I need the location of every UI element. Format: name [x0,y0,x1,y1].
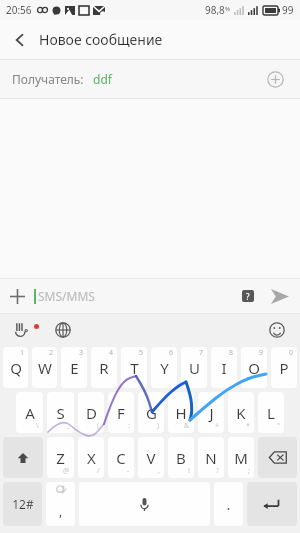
staticText: J [209,403,214,423]
button[interactable]: P [271,347,297,388]
staticText: U [189,358,200,378]
button[interactable]: I [211,347,237,388]
staticText: Q [10,358,22,378]
button[interactable]: 12# [3,482,42,526]
staticText: / [97,466,100,476]
button[interactable]: . [214,482,243,526]
staticText: : [128,421,130,431]
staticText: \ [36,421,39,431]
button[interactable]: V [138,437,164,478]
button[interactable]: F [108,392,134,433]
button[interactable]: Send [264,280,296,312]
staticText: 7 [199,348,204,358]
staticText: L [267,403,275,423]
staticText: B [176,448,186,468]
staticText: ! [188,466,190,476]
button[interactable]: Y [151,347,177,388]
button[interactable]: L [258,392,284,433]
button[interactable]: N [198,437,224,478]
staticText: O [248,358,260,378]
button[interactable]: Q [3,347,28,388]
button[interactable]: Language [46,482,75,526]
staticText: N [205,448,217,468]
staticText: I [221,358,227,378]
button[interactable]: B [168,437,194,478]
button[interactable]: O [241,347,267,388]
button[interactable]: K [228,392,254,433]
button[interactable]: Получатель: [0,60,300,98]
staticText: P [279,358,289,378]
staticText: G [146,403,157,423]
button[interactable]: Emoji [264,317,290,343]
button[interactable]: Change language [51,318,75,342]
staticText: * [246,421,250,431]
staticText: Получатель: [12,71,84,87]
staticText: 2 [49,348,54,358]
staticText: ? [246,291,250,302]
button[interactable]: Z [47,437,74,478]
staticText: + [215,421,220,431]
staticText: Новое сообщение [39,30,163,49]
button[interactable]: D [78,392,104,433]
staticText: 12# [12,496,34,512]
button[interactable]: T [121,347,147,388]
staticText: X [87,448,96,468]
staticText: 0 [289,348,294,358]
staticText: 5 [139,348,144,358]
staticText: 8 [229,348,234,358]
staticText: " [277,421,280,431]
staticText: Z [56,448,65,468]
staticText: - [127,466,130,476]
staticText: ? [216,466,220,476]
button[interactable]: U [181,347,207,388]
staticText: V [146,448,156,468]
staticText: 9 [259,348,264,358]
staticText: , [158,466,160,476]
button[interactable]: E [61,347,87,388]
staticText: , [59,502,63,520]
staticText: % [225,5,230,13]
button[interactable]: Add attachment [0,279,34,313]
staticText: T [130,358,139,378]
button[interactable]: A [16,392,43,433]
staticText: 1 [20,348,25,358]
button[interactable]: W [32,347,57,388]
button[interactable]: Handwriting [11,319,33,341]
button[interactable]: H [168,392,194,433]
button[interactable]: Enter [247,482,297,526]
staticText: ) [157,421,160,431]
button[interactable]: Back [0,20,39,59]
staticText: ddf [93,71,112,87]
staticText: E [70,358,79,378]
button[interactable]: G [138,392,164,433]
staticText: M [234,448,248,468]
staticText: F [117,403,125,423]
staticText: SMS/MMS [38,288,95,304]
button[interactable]: S [47,392,74,433]
button[interactable]: Add recipient [262,66,288,92]
staticText: R [99,358,109,378]
staticText: 6 [169,348,174,358]
staticText: D [86,403,97,423]
staticText: _ [66,421,70,431]
staticText: Y [160,358,169,378]
button[interactable]: J [198,392,224,433]
staticText: ( [97,421,100,431]
button[interactable]: Shift [3,437,43,478]
button[interactable]: M [228,437,254,478]
staticText: . [226,494,231,514]
staticText: 20:56 [6,3,32,17]
staticText: 3 [79,348,84,358]
button[interactable]: Space [79,482,210,526]
staticText: H [175,403,187,423]
button[interactable]: X [78,437,104,478]
staticText: K [236,403,246,423]
button[interactable]: Backspace [258,437,297,478]
staticText: A [25,403,35,423]
button[interactable]: R [91,347,117,388]
button[interactable]: C [108,437,134,478]
staticText: 99 [282,3,294,17]
staticText: W [38,358,52,378]
staticText: S [56,403,65,423]
staticText: ; [248,466,250,476]
